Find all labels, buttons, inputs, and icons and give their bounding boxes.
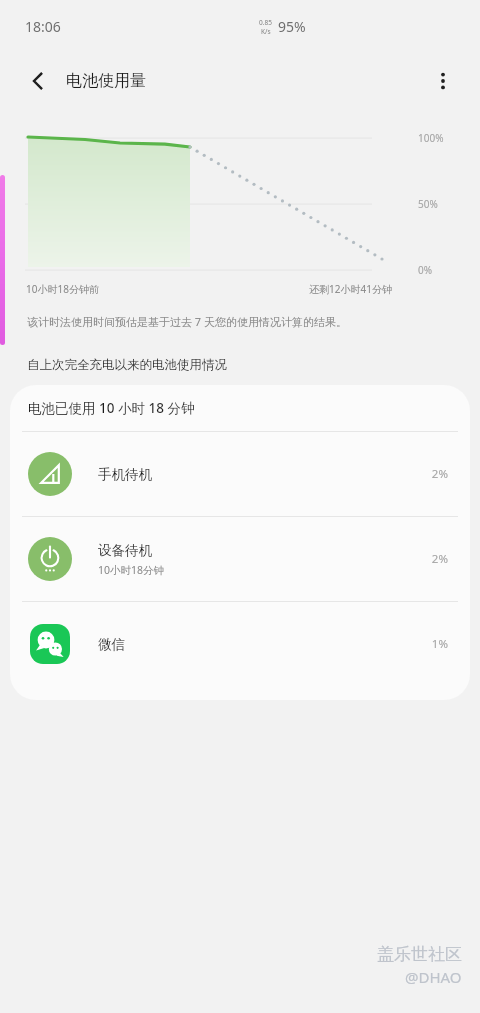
- button[interactable]: 微信: [10, 602, 470, 686]
- staticText: 10小时18分钟前: [26, 282, 99, 296]
- staticText: 电池使用量: [66, 71, 146, 91]
- staticText: 2%: [431, 551, 448, 567]
- staticText: 100%: [418, 131, 444, 145]
- button[interactable]: More options: [422, 60, 464, 102]
- staticText: 还剩12小时41分钟: [309, 282, 392, 296]
- staticText: 盖乐世社区: [377, 944, 462, 965]
- staticText: @DHAO: [405, 967, 462, 987]
- staticText: 1%: [431, 636, 448, 652]
- staticText: 手机待机: [98, 466, 152, 483]
- button[interactable]: Back: [18, 61, 58, 101]
- staticText: 0%: [418, 263, 433, 277]
- staticText: 电池已使用 10 小时 18 分钟: [28, 399, 195, 417]
- staticText: 0.85: [259, 18, 272, 27]
- staticText: 微信: [98, 636, 125, 653]
- button[interactable]: 设备待机: [10, 517, 470, 601]
- staticText: 自上次完全充电以来的电池使用情况: [27, 357, 227, 373]
- staticText: 该计时法使用时间预估是基于过去 7 天您的使用情况计算的结果。: [27, 314, 348, 329]
- button[interactable]: 手机待机: [10, 432, 470, 516]
- staticText: 10小时18分钟: [98, 563, 165, 577]
- staticText: 18:06: [25, 17, 61, 36]
- staticText: 设备待机: [98, 542, 152, 559]
- staticText: 2%: [431, 466, 448, 482]
- staticText: 50%: [418, 197, 438, 211]
- staticText: 95%: [278, 17, 306, 36]
- staticText: K/s: [261, 27, 271, 36]
